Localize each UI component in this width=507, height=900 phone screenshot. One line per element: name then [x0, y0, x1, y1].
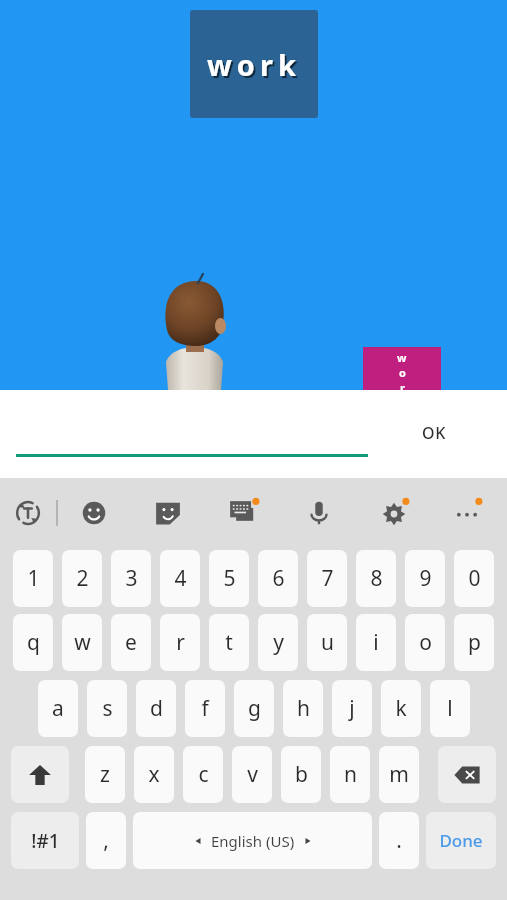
button[interactable]: 7 [307, 550, 347, 607]
staticText: z [100, 760, 110, 789]
staticText: o [399, 365, 406, 380]
button[interactable]: l [430, 680, 470, 737]
staticText: 8 [370, 564, 383, 593]
staticText: j [349, 694, 355, 723]
button[interactable]: Shift [11, 746, 69, 803]
button[interactable]: q [13, 614, 53, 671]
staticText: y [273, 628, 284, 657]
staticText: d [150, 694, 163, 723]
button[interactable]: y [258, 614, 298, 671]
button[interactable]: i [356, 614, 396, 671]
staticText: t [225, 628, 233, 657]
button[interactable]: 9 [405, 550, 445, 607]
button[interactable]: 3 [111, 550, 151, 607]
button[interactable]: , [86, 812, 126, 869]
staticText: w [74, 628, 91, 657]
button[interactable]: OK [392, 412, 476, 454]
button[interactable]: h [283, 680, 323, 737]
button[interactable]: Text translate [0, 478, 56, 548]
staticText: c [198, 760, 209, 789]
button[interactable]: p [454, 614, 494, 671]
button[interactable]: 8 [356, 550, 396, 607]
button[interactable]: 0 [454, 550, 494, 607]
button[interactable]: Voice input [282, 478, 356, 548]
staticText: English (US) [211, 831, 295, 851]
button[interactable]: 4 [160, 550, 200, 607]
staticText: work [207, 45, 301, 84]
staticText: h [297, 694, 310, 723]
button[interactable]: 1 [13, 550, 53, 607]
button[interactable]: 5 [209, 550, 249, 607]
button[interactable]: m [379, 746, 419, 803]
button[interactable]: d [136, 680, 176, 737]
staticText: , [103, 826, 109, 855]
staticText: i [373, 628, 379, 657]
staticText: 5 [223, 564, 236, 593]
staticText: 1 [27, 564, 40, 593]
button[interactable]: v [232, 746, 272, 803]
staticText: 4 [174, 564, 187, 593]
staticText: p [468, 628, 481, 657]
staticText: 0 [468, 564, 481, 593]
button[interactable]: t [209, 614, 249, 671]
staticText: m [389, 760, 409, 789]
button[interactable]: Settings [356, 478, 432, 548]
staticText: o [419, 628, 432, 657]
staticText: q [27, 628, 40, 657]
staticText: e [125, 628, 137, 657]
staticText: 9 [419, 564, 432, 593]
button[interactable]: Stickers [130, 478, 206, 548]
staticText: w [397, 350, 407, 365]
button[interactable]: w [62, 614, 102, 671]
button[interactable]: k [381, 680, 421, 737]
button[interactable]: n [330, 746, 370, 803]
staticText: . [396, 826, 402, 855]
button[interactable]: !#1 [11, 812, 79, 869]
button[interactable]: r [160, 614, 200, 671]
staticText: s [102, 694, 113, 723]
button[interactable]: Done [426, 812, 496, 869]
button[interactable]: s [87, 680, 127, 737]
staticText: x [148, 760, 160, 789]
button[interactable]: 2 [62, 550, 102, 607]
staticText: 2 [76, 564, 89, 593]
button[interactable]: Emoji [58, 478, 130, 548]
button[interactable]: More options [432, 478, 502, 548]
staticText: r [176, 628, 185, 657]
button[interactable]: b [281, 746, 321, 803]
staticText: f [201, 694, 209, 723]
button[interactable]: x [134, 746, 174, 803]
staticText: work [209, 47, 303, 86]
staticText: 7 [321, 564, 334, 593]
staticText: OK [422, 422, 446, 444]
button[interactable]: a [38, 680, 78, 737]
staticText: u [321, 628, 334, 657]
staticText: r [400, 380, 405, 390]
staticText: b [295, 760, 308, 789]
staticText: !#1 [31, 828, 60, 854]
button[interactable]: j [332, 680, 372, 737]
button[interactable]: . [379, 812, 419, 869]
button[interactable]: z [85, 746, 125, 803]
staticText: g [248, 694, 261, 723]
staticText: l [447, 694, 453, 723]
button[interactable]: e [111, 614, 151, 671]
staticText: Done [439, 829, 483, 852]
staticText: n [344, 760, 357, 789]
staticText: 3 [125, 564, 138, 593]
button[interactable]: Keyboard modes [206, 478, 282, 548]
button[interactable]: English (US) [133, 812, 372, 869]
staticText: a [52, 694, 64, 723]
button[interactable]: u [307, 614, 347, 671]
button[interactable]: f [185, 680, 225, 737]
staticText: v [247, 760, 258, 789]
staticText: k [395, 694, 407, 723]
staticText: 6 [272, 564, 285, 593]
button[interactable]: g [234, 680, 274, 737]
button[interactable]: Backspace [438, 746, 496, 803]
button[interactable]: o [405, 614, 445, 671]
button[interactable]: 6 [258, 550, 298, 607]
button[interactable]: c [183, 746, 223, 803]
